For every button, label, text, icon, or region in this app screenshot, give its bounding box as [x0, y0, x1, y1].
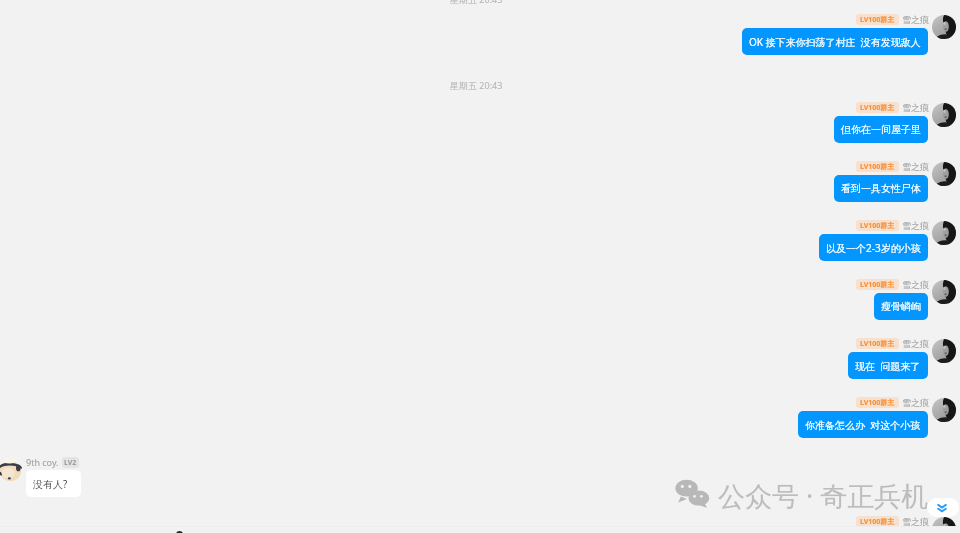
staticText: 星期五 20:43	[450, 79, 503, 91]
button[interactable]: 你准备怎么办 对这个小孩	[798, 411, 928, 438]
button[interactable]: Avatar of 雪之痕	[932, 280, 956, 304]
staticText: 没有人?	[33, 477, 68, 491]
staticText: 雪之痕	[902, 161, 929, 172]
button[interactable]: Scroll to bottom	[927, 498, 959, 517]
staticText: 雪之痕	[902, 516, 929, 526]
staticText: 雪之痕	[902, 338, 929, 349]
staticText: 9th coy.	[26, 456, 59, 468]
staticText: 公众号 · 奇正兵机	[718, 477, 929, 514]
staticText: LV100群主	[860, 103, 895, 113]
button[interactable]: Avatar of 雪之痕	[932, 398, 956, 422]
staticText: LV100群主	[860, 280, 895, 290]
button[interactable]: Avatar of 9th coy.	[0, 458, 22, 481]
button[interactable]: 看到一具女性尸体	[834, 175, 928, 202]
button[interactable]: Avatar of 雪之痕	[932, 15, 956, 39]
staticText: LV100群主	[860, 15, 895, 25]
staticText: LV100群主	[860, 398, 895, 408]
staticText: 雪之痕	[902, 279, 929, 290]
staticText: LV100群主	[860, 517, 895, 526]
button[interactable]: Voice input	[176, 531, 183, 533]
button[interactable]: OK 接下来你扫荡了村庄 没有发现敌人	[742, 28, 928, 55]
staticText: 雪之痕	[902, 14, 929, 25]
staticText: 瘦骨嶙峋	[881, 300, 921, 313]
staticText: 星期五 20:43	[450, 0, 503, 5]
staticText: LV100群主	[860, 221, 895, 231]
staticText: LV2	[64, 458, 77, 468]
staticText: 雪之痕	[902, 102, 929, 113]
button[interactable]: 以及一个2-3岁的小孩	[819, 234, 928, 261]
button[interactable]: 没有人?	[26, 470, 81, 497]
staticText: 你准备怎么办 对这个小孩	[805, 418, 921, 432]
staticText: 现在 问题来了	[855, 359, 921, 373]
staticText: LV100群主	[860, 339, 895, 349]
button[interactable]: 现在 问题来了	[848, 352, 928, 379]
staticText: 以及一个2-3岁的小孩	[826, 241, 921, 255]
button[interactable]: Avatar of 雪之痕	[932, 162, 956, 186]
button[interactable]: Avatar of 雪之痕	[932, 339, 956, 363]
staticText: OK 接下来你扫荡了村庄 没有发现敌人	[749, 35, 921, 49]
staticText: 雪之痕	[902, 397, 929, 408]
staticText: LV100群主	[860, 162, 895, 172]
button[interactable]: Avatar of 雪之痕	[932, 517, 956, 526]
staticText: 看到一具女性尸体	[841, 182, 921, 195]
button[interactable]: Avatar of 雪之痕	[932, 103, 956, 127]
button[interactable]: 瘦骨嶙峋	[874, 293, 928, 320]
staticText: 雪之痕	[902, 220, 929, 231]
button[interactable]: 但你在一间屋子里	[834, 116, 928, 143]
button[interactable]: Avatar of 雪之痕	[932, 221, 956, 245]
staticText: 但你在一间屋子里	[841, 123, 921, 136]
